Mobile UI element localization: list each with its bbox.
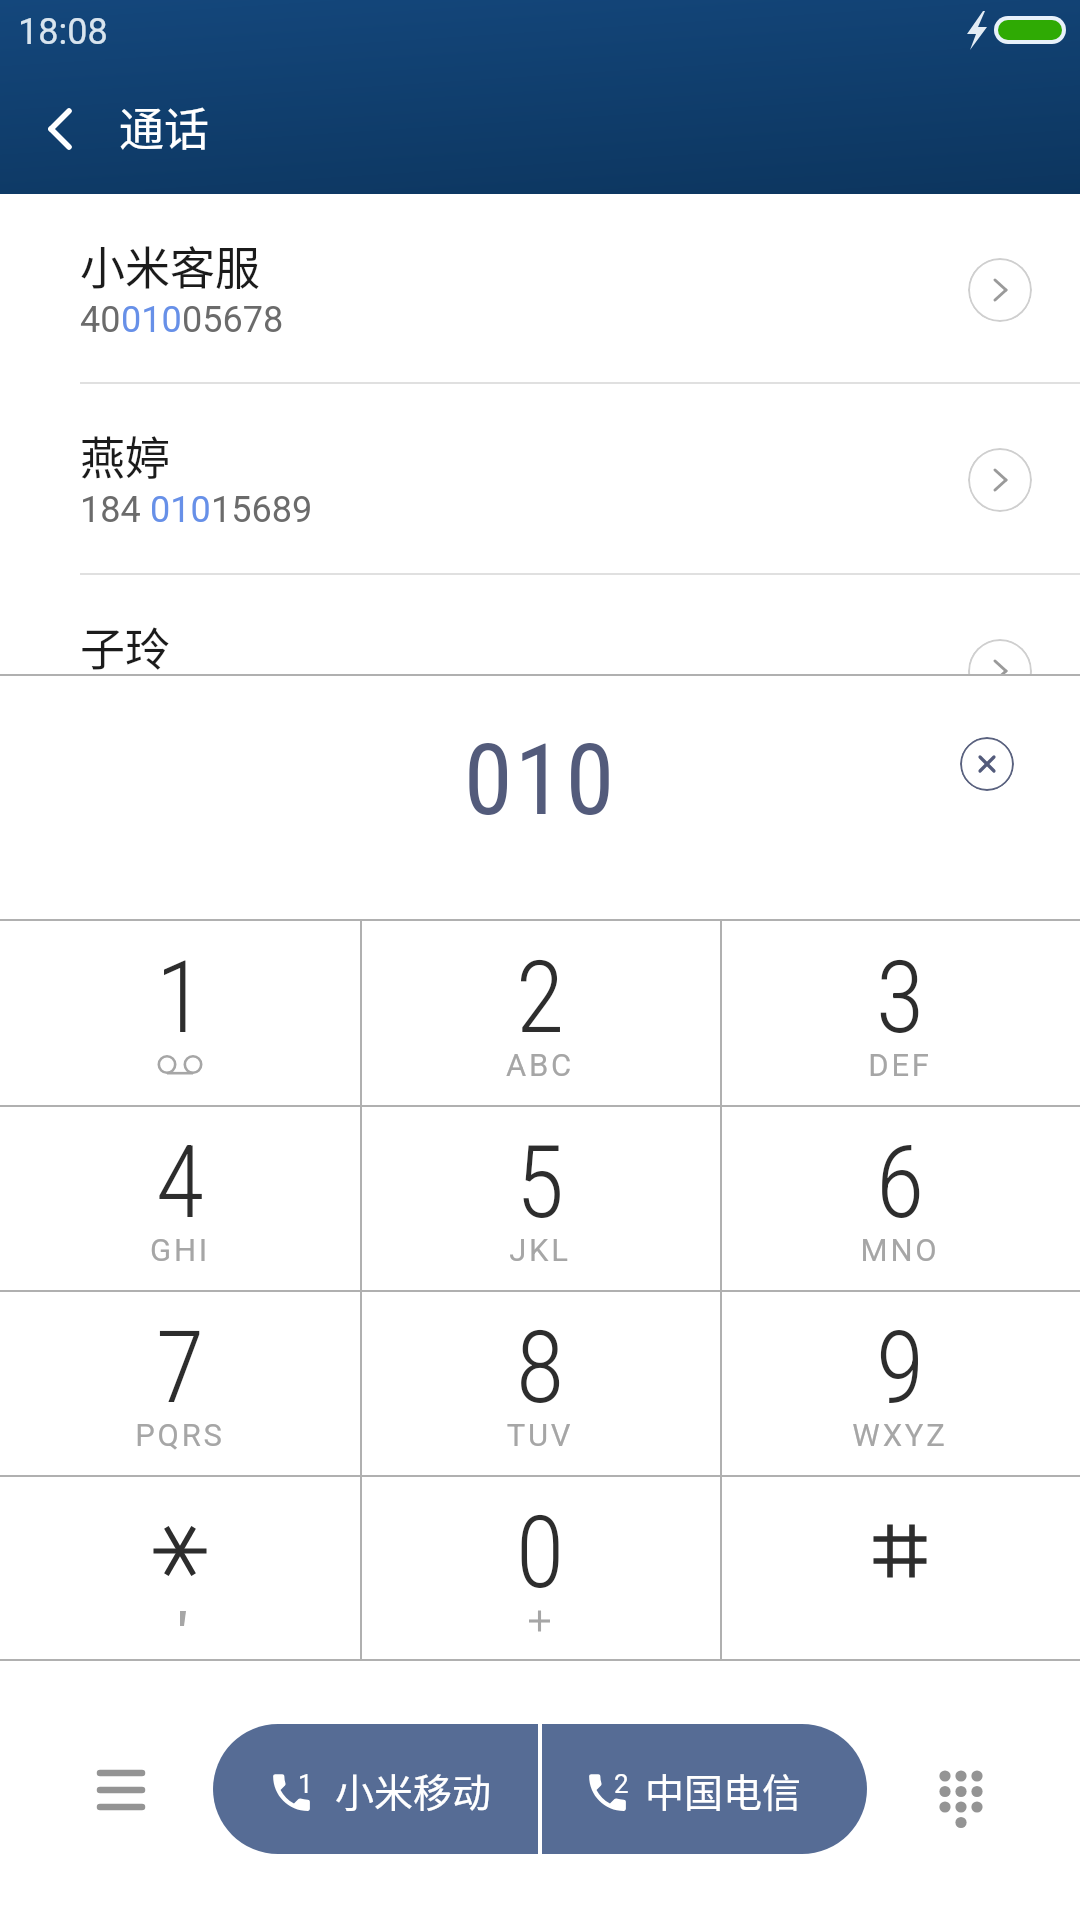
button[interactable]: Open contact — [968, 448, 1032, 512]
staticText: 通话 — [119, 94, 210, 159]
button[interactable]: 2 — [360, 921, 720, 1106]
staticText: 小米移动 — [335, 1762, 492, 1818]
staticText: 40 — [80, 299, 121, 341]
button[interactable]: 0 — [360, 1476, 720, 1661]
staticText: 1 — [0, 939, 360, 1056]
staticText: TUV — [360, 1417, 720, 1453]
button[interactable]: Open contact — [968, 258, 1032, 322]
staticText: 05678 — [182, 299, 284, 341]
button[interactable]: Open contact — [968, 639, 1032, 676]
button[interactable]: 7 — [0, 1291, 360, 1476]
button[interactable]: 1 — [0, 921, 360, 1106]
button[interactable]: 9 — [720, 1291, 1080, 1476]
staticText: 010 — [121, 299, 182, 341]
staticText: 184 — [80, 489, 150, 531]
staticText: 18:08 — [18, 11, 108, 53]
staticText: 2 — [614, 1769, 629, 1799]
button[interactable]: 燕婷 — [0, 384, 1080, 572]
button[interactable]: 1 — [213, 1724, 538, 1854]
staticText: 燕婷 — [80, 423, 171, 488]
staticText: 010 — [0, 722, 1080, 838]
staticText: WXYZ — [720, 1417, 1080, 1453]
staticText: 中国电信 — [645, 1762, 802, 1818]
button[interactable]: 6 — [720, 1106, 1080, 1291]
staticText: 小米客服 — [80, 233, 261, 298]
button[interactable]: Dialpad — [919, 1749, 1001, 1831]
staticText: PQRS — [0, 1417, 360, 1453]
button[interactable]: Clear — [960, 737, 1014, 791]
staticText: 4 — [0, 1124, 360, 1241]
button[interactable] — [720, 1476, 1080, 1661]
staticText: DEF — [720, 1047, 1080, 1083]
staticText: 6 — [720, 1124, 1080, 1241]
staticText: 010 — [150, 489, 211, 531]
staticText: 8 — [360, 1309, 720, 1426]
button[interactable]: 8 — [360, 1291, 720, 1476]
staticText: ABC — [360, 1047, 720, 1083]
button[interactable]: 子玲 — [0, 575, 1080, 676]
staticText: 7 — [0, 1309, 360, 1426]
staticText: 5 — [360, 1124, 720, 1241]
button[interactable]: 3 — [720, 921, 1080, 1106]
staticText: 15689 — [211, 489, 313, 531]
button[interactable]: 2 — [542, 1724, 867, 1854]
staticText: 子玲 — [80, 614, 171, 676]
button[interactable]: 4 — [0, 1106, 360, 1291]
button[interactable]: Back — [10, 82, 110, 172]
staticText: 3 — [720, 939, 1080, 1056]
button[interactable] — [0, 1476, 360, 1661]
staticText: 1 — [298, 1769, 313, 1799]
staticText: 0 — [360, 1494, 720, 1611]
button[interactable]: 5 — [360, 1106, 720, 1291]
staticText: GHI — [0, 1232, 360, 1268]
staticText: MNO — [720, 1232, 1080, 1268]
button[interactable]: Call history — [80, 1749, 162, 1831]
staticText: JKL — [360, 1232, 720, 1268]
button[interactable]: 小米客服 — [0, 194, 1080, 382]
staticText: 9 — [720, 1309, 1080, 1426]
staticText: 2 — [360, 939, 720, 1056]
